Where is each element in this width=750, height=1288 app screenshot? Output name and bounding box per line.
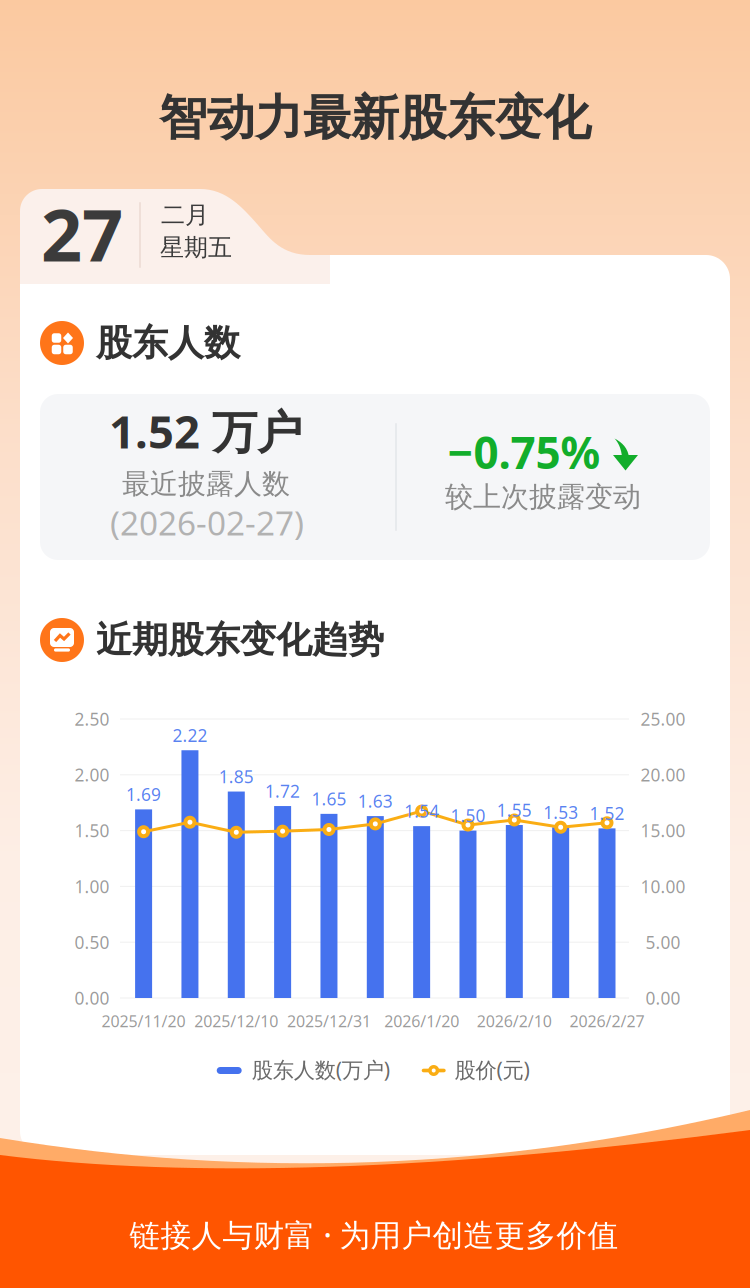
staticText: 股东人数 (96, 321, 240, 365)
staticText: 2026/1/20 (384, 1010, 459, 1032)
staticText: 15.00 (640, 819, 685, 842)
staticText: 27 (41, 186, 123, 281)
staticText: 2.50 (74, 707, 109, 730)
staticText: 星期五 (160, 233, 232, 262)
staticText: 5.00 (645, 931, 680, 954)
staticText: 1.54 (404, 800, 439, 823)
staticText: 最近披露人数 (122, 467, 290, 501)
staticText: 2.22 (172, 724, 207, 747)
staticText: 0.00 (74, 986, 109, 1009)
staticText: 25.00 (640, 707, 685, 730)
staticText: 2025/12/31 (287, 1010, 371, 1032)
staticText: 2025/11/20 (102, 1010, 186, 1032)
staticText: 2026/2/10 (477, 1010, 552, 1032)
staticText: 股价(元) (454, 1055, 529, 1084)
staticText: 链接人与财富 · 为用户创造更多价值 (129, 1214, 618, 1255)
staticText: 1.69 (126, 783, 161, 806)
staticText: 1.63 (358, 790, 393, 813)
staticText: 20.00 (640, 763, 685, 786)
staticText: 1.72 (265, 779, 300, 802)
staticText: 1.65 (311, 787, 346, 810)
staticText: 1.50 (450, 804, 485, 827)
staticText: 1.00 (74, 875, 109, 898)
staticText: 1.50 (74, 819, 109, 842)
staticText: 股东人数(万户) (252, 1055, 390, 1084)
staticText: 0.00 (645, 986, 680, 1009)
staticText: 2026/2/27 (569, 1010, 644, 1032)
staticText: 10.00 (640, 875, 685, 898)
staticText: 近期股东变化趋势 (96, 618, 384, 662)
staticText: 2025/12/10 (194, 1010, 278, 1032)
staticText: 0.50 (74, 931, 109, 954)
staticText: 2.00 (74, 763, 109, 786)
staticText: 1.55 (497, 798, 532, 821)
staticText: 1.53 (543, 801, 578, 824)
staticText: 智动力最新股东变化 (159, 88, 591, 147)
staticText: 1.85 (219, 765, 254, 788)
staticText: (2026-02-27) (110, 500, 304, 545)
staticText: 较上次披露变动 (445, 480, 641, 514)
staticText: 1.52 万户 (109, 401, 302, 461)
staticText: −0.75% (447, 423, 600, 481)
staticText: 二月 (161, 200, 209, 230)
staticText: 1.52 (589, 802, 624, 825)
